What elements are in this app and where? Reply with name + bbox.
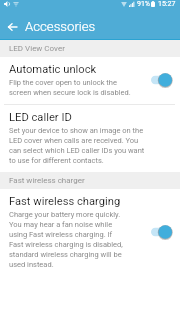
button[interactable]: Toggle on xyxy=(150,224,173,240)
staticText: 91% xyxy=(137,0,150,8)
staticText: Accessories xyxy=(25,19,96,34)
button[interactable]: Fast wireless charging xyxy=(0,189,180,276)
staticText: Set your device to show an image on the … xyxy=(9,126,145,165)
staticText: LED View Cover xyxy=(9,44,65,53)
staticText: Charge your battery more quickly. You ma… xyxy=(9,210,123,269)
staticText: Flip the cover open to unlock the screen… xyxy=(9,78,131,97)
staticText: LED caller ID xyxy=(9,111,72,124)
button[interactable]: Automatic unlock xyxy=(0,57,180,104)
staticText: 15:27 xyxy=(158,0,176,8)
staticText: Fast wireless charger xyxy=(9,176,85,185)
button[interactable]: Back xyxy=(0,14,25,39)
button[interactable]: Toggle on xyxy=(150,72,173,88)
staticText: Fast wireless charging xyxy=(9,195,121,208)
staticText: Automatic unlock xyxy=(9,63,97,76)
button[interactable]: LED caller ID xyxy=(0,105,180,172)
